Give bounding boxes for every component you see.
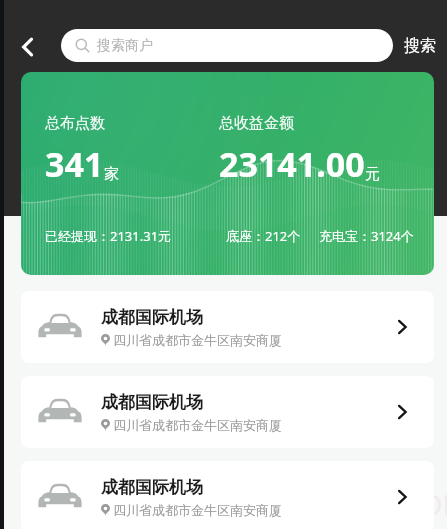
staticText: 341 xyxy=(45,141,104,187)
button[interactable]: 搜索 xyxy=(396,29,444,62)
button[interactable]: 总布点数 xyxy=(21,72,434,275)
staticText: 华强北商城 HQBSHANGZS.COM xyxy=(74,486,447,523)
button[interactable]: 成都国际机场 xyxy=(21,291,434,363)
staticText: 四川省成都市金牛区南安商厦 xyxy=(113,332,282,348)
button[interactable]: 成都国际机场 xyxy=(21,376,434,448)
staticText: 23141.00 xyxy=(219,141,365,187)
staticText: 成都国际机场 xyxy=(101,307,203,328)
other: Open merchant xyxy=(382,307,422,347)
staticText: 已经提现：2131.31元 xyxy=(45,227,172,245)
button[interactable]: 搜索商户 xyxy=(61,29,393,62)
staticText: 总布点数 xyxy=(45,114,105,133)
staticText: 家 xyxy=(104,165,119,184)
staticText: 元 xyxy=(365,165,380,184)
staticText: 充电宝：3124个 xyxy=(319,227,414,245)
other: Open merchant xyxy=(382,392,422,432)
staticText: 搜索商户 xyxy=(97,37,153,55)
staticText: 底座：212个 xyxy=(226,227,301,245)
button[interactable]: Back xyxy=(8,27,48,67)
staticText: 总收益金额 xyxy=(219,114,294,133)
staticText: 成都国际机场 xyxy=(101,392,203,413)
staticText: 四川省成都市金牛区南安商厦 xyxy=(113,502,282,518)
staticText: 四川省成都市金牛区南安商厦 xyxy=(113,417,282,433)
other: Open merchant xyxy=(382,477,422,517)
button[interactable]: 成都国际机场 xyxy=(21,461,434,529)
staticText: 成都国际机场 xyxy=(101,477,203,498)
staticText: 搜索 xyxy=(404,36,436,56)
